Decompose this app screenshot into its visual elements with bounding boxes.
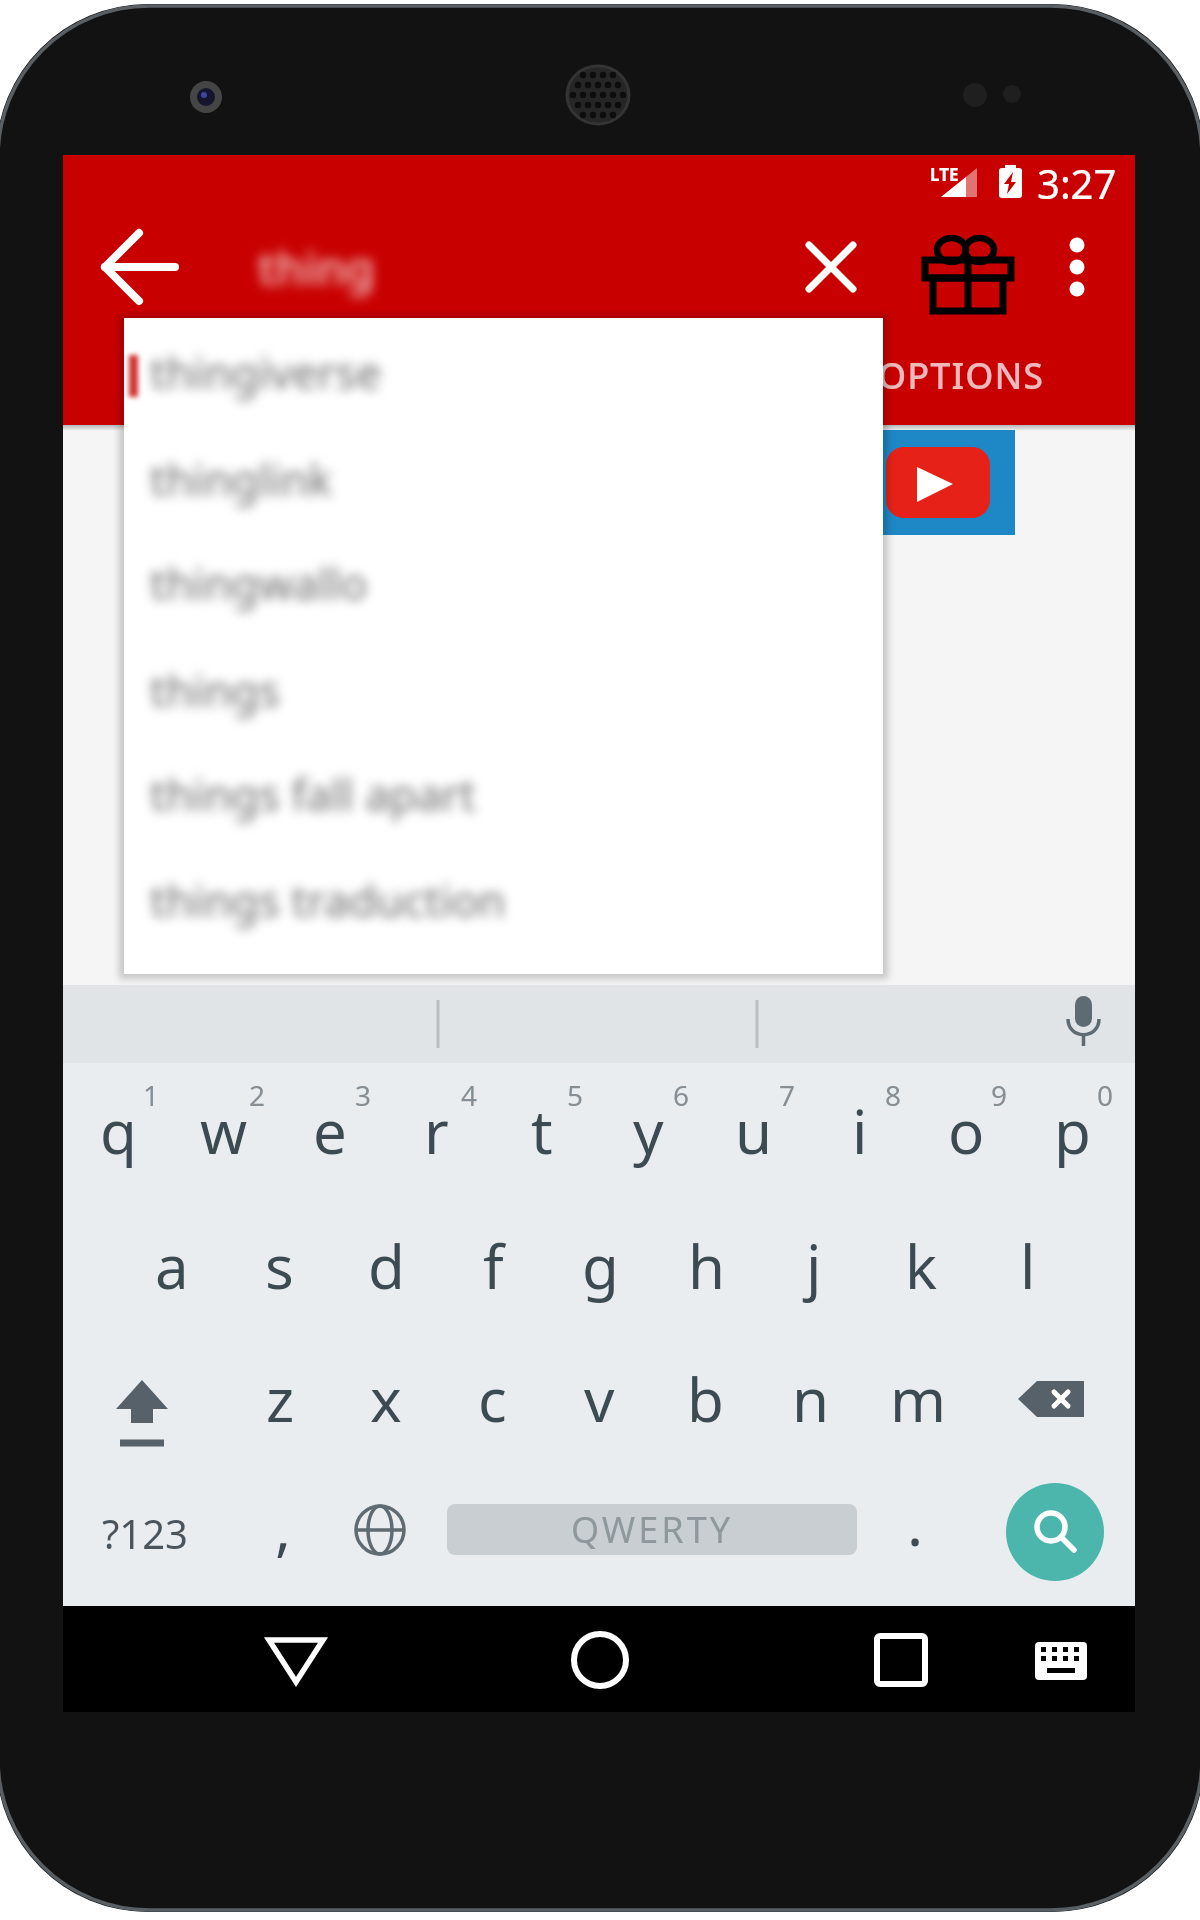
button[interactable]: e: [278, 1066, 382, 1196]
staticText: h: [688, 1225, 726, 1307]
staticText: 5: [567, 1076, 584, 1114]
button[interactable]: ,: [248, 1467, 318, 1587]
staticText: thingwallo: [150, 553, 368, 613]
staticText: j: [806, 1225, 822, 1307]
staticText: 9: [991, 1076, 1008, 1114]
button[interactable]: [1006, 1483, 1104, 1581]
staticText: q: [100, 1090, 137, 1172]
staticText: 0: [1097, 1076, 1114, 1114]
button[interactable]: l: [976, 1201, 1080, 1331]
staticText: thinglink: [150, 449, 333, 509]
button[interactable]: thingwallo: [124, 531, 883, 635]
button[interactable]: thinglink: [124, 427, 883, 531]
button[interactable]: i: [808, 1066, 912, 1196]
button[interactable]: x: [334, 1334, 438, 1464]
staticText: y: [633, 1090, 664, 1172]
staticText: 2: [249, 1076, 266, 1114]
staticText: ?123: [102, 1506, 188, 1560]
button[interactable]: [103, 231, 175, 303]
staticText: s: [265, 1225, 294, 1307]
staticText: u: [735, 1090, 773, 1172]
button[interactable]: [841, 1606, 961, 1712]
staticText: b: [687, 1358, 724, 1440]
staticText: g: [582, 1225, 619, 1307]
button[interactable]: ?123: [80, 1473, 210, 1593]
staticText: i: [852, 1090, 868, 1172]
button[interactable]: thingiverse: [124, 320, 883, 424]
staticText: d: [368, 1225, 405, 1307]
button[interactable]: p: [1020, 1066, 1124, 1196]
button[interactable]: d: [334, 1201, 438, 1331]
staticText: ,: [275, 1486, 292, 1568]
staticText: e: [313, 1090, 347, 1172]
staticText: 4: [461, 1076, 478, 1114]
button[interactable]: t: [490, 1066, 594, 1196]
button[interactable]: a: [120, 1201, 224, 1331]
staticText: p: [1054, 1090, 1091, 1172]
button[interactable]: things: [124, 638, 883, 742]
button[interactable]: QWERTY: [447, 1504, 857, 1555]
button[interactable]: z: [228, 1334, 332, 1464]
button[interactable]: y: [596, 1066, 700, 1196]
staticText: r: [424, 1090, 449, 1172]
button[interactable]: [236, 1606, 356, 1712]
button[interactable]: [540, 1606, 660, 1712]
staticText: things fall apart: [150, 764, 476, 824]
button[interactable]: h: [655, 1201, 759, 1331]
button[interactable]: g: [548, 1201, 652, 1331]
button[interactable]: u: [702, 1066, 806, 1196]
staticText: things: [150, 660, 280, 720]
staticText: 3:27: [1037, 156, 1117, 210]
button[interactable]: s: [227, 1201, 331, 1331]
staticText: l: [1020, 1225, 1036, 1307]
button[interactable]: f: [441, 1201, 545, 1331]
staticText: 6: [673, 1076, 690, 1114]
staticText: w: [200, 1090, 248, 1172]
staticText: t: [531, 1090, 553, 1172]
button[interactable]: [1021, 1606, 1111, 1712]
staticText: LTE: [930, 163, 959, 186]
staticText: k: [905, 1225, 938, 1307]
button[interactable]: [1041, 231, 1113, 303]
button[interactable]: .: [880, 1463, 950, 1583]
button[interactable]: [795, 231, 867, 303]
staticText: c: [478, 1358, 507, 1440]
staticText: v: [584, 1358, 615, 1440]
staticText: 3: [355, 1076, 372, 1114]
button[interactable]: q: [66, 1066, 170, 1196]
button[interactable]: things traduction: [124, 848, 883, 952]
button[interactable]: [925, 225, 1015, 309]
staticText: m: [890, 1358, 947, 1440]
staticText: x: [370, 1358, 402, 1440]
button[interactable]: v: [547, 1334, 651, 1464]
button[interactable]: c: [440, 1334, 544, 1464]
staticText: thingiverse: [150, 342, 382, 402]
staticText: a: [155, 1225, 189, 1307]
button[interactable]: r: [384, 1066, 488, 1196]
button[interactable]: n: [759, 1334, 863, 1464]
staticText: things traduction: [150, 870, 506, 930]
button[interactable]: k: [869, 1201, 973, 1331]
staticText: o: [948, 1090, 985, 1172]
staticText: thing: [258, 236, 375, 299]
button[interactable]: o: [914, 1066, 1018, 1196]
staticText: QWERTY: [571, 1505, 734, 1554]
staticText: z: [266, 1358, 295, 1440]
staticText: 7: [779, 1076, 796, 1114]
staticText: OPTIONS: [878, 351, 1045, 400]
staticText: 8: [885, 1076, 902, 1114]
button[interactable]: w: [172, 1066, 276, 1196]
button[interactable]: j: [762, 1201, 866, 1331]
staticText: 1: [143, 1076, 160, 1114]
staticText: .: [907, 1482, 924, 1564]
button[interactable]: things fall apart: [124, 742, 883, 846]
button[interactable]: [883, 430, 1015, 535]
staticText: f: [483, 1225, 504, 1307]
staticText: n: [792, 1358, 830, 1440]
button[interactable]: b: [653, 1334, 757, 1464]
button[interactable]: m: [866, 1334, 970, 1464]
